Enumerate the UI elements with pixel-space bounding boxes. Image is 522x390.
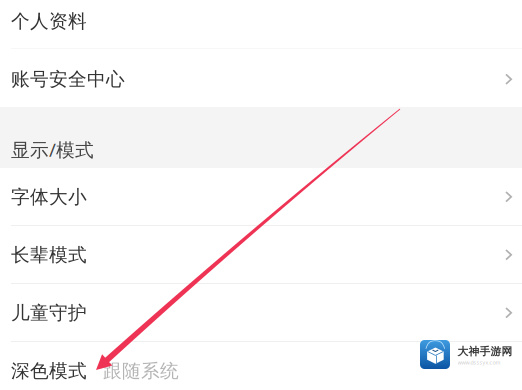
staticText: 大神手游网 xyxy=(457,345,512,358)
button[interactable]: 个人资料 xyxy=(0,0,522,49)
staticText: 深色模式 xyxy=(11,359,87,382)
staticText: www.dsssyx.com xyxy=(457,359,500,366)
staticText: 显示/模式 xyxy=(11,137,94,162)
staticText: 个人资料 xyxy=(11,10,87,33)
button[interactable]: 账号安全中心 xyxy=(0,49,522,107)
staticText: 长辈模式 xyxy=(11,243,87,266)
button[interactable]: 儿童守护 xyxy=(0,284,522,342)
staticText: 账号安全中心 xyxy=(11,68,125,91)
staticText: 字体大小 xyxy=(11,185,87,208)
button[interactable]: 长辈模式 xyxy=(0,226,522,284)
button[interactable]: 字体大小 xyxy=(0,168,522,226)
staticText: 跟随系统 xyxy=(103,359,179,382)
button[interactable]: 深色模式 xyxy=(0,342,522,390)
staticText: 儿童守护 xyxy=(11,301,87,324)
